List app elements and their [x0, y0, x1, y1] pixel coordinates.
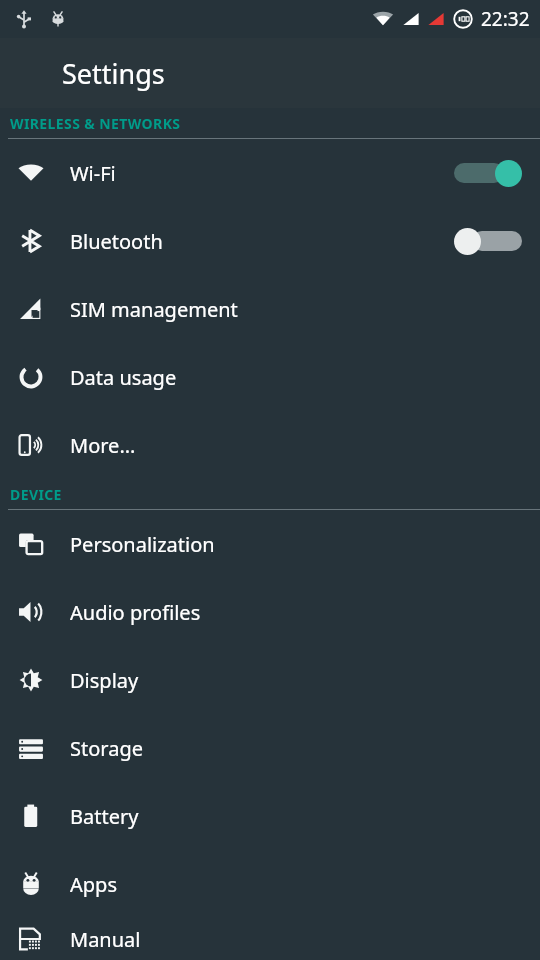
staticText: Settings	[62, 55, 165, 92]
button[interactable]: Display	[0, 646, 540, 714]
button[interactable]: Battery	[0, 782, 540, 850]
staticText: Apps	[70, 871, 117, 898]
staticText: Wi-Fi	[70, 160, 116, 187]
staticText: Audio profiles	[70, 599, 201, 626]
staticText: Battery	[70, 803, 139, 830]
staticText: WIRELESS & NETWORKS	[10, 114, 181, 133]
button[interactable]: Data usage	[0, 343, 540, 411]
staticText: Manual	[70, 926, 141, 953]
staticText: Bluetooth	[70, 228, 163, 255]
staticText: Display	[70, 667, 139, 694]
button[interactable]: Bluetooth	[0, 207, 540, 275]
button[interactable]: Audio profiles	[0, 578, 540, 646]
staticText: SIM management	[70, 296, 238, 323]
button[interactable]: More...	[0, 411, 540, 479]
staticText: Data usage	[70, 364, 177, 391]
staticText: DEVICE	[10, 485, 62, 504]
button[interactable]: Manual	[0, 918, 540, 960]
staticText: Storage	[70, 735, 143, 762]
button[interactable]: Personalization	[0, 510, 540, 578]
button[interactable]: Wi-Fi	[0, 139, 540, 207]
staticText: Personalization	[70, 531, 215, 558]
button[interactable]: Apps	[0, 850, 540, 918]
button[interactable]: Storage	[0, 714, 540, 782]
button[interactable]: Toggle off	[454, 224, 522, 258]
button[interactable]: SIM management	[0, 275, 540, 343]
button[interactable]: Toggle on	[454, 156, 522, 190]
staticText: More...	[70, 432, 136, 459]
staticText: 22:32	[481, 6, 530, 32]
